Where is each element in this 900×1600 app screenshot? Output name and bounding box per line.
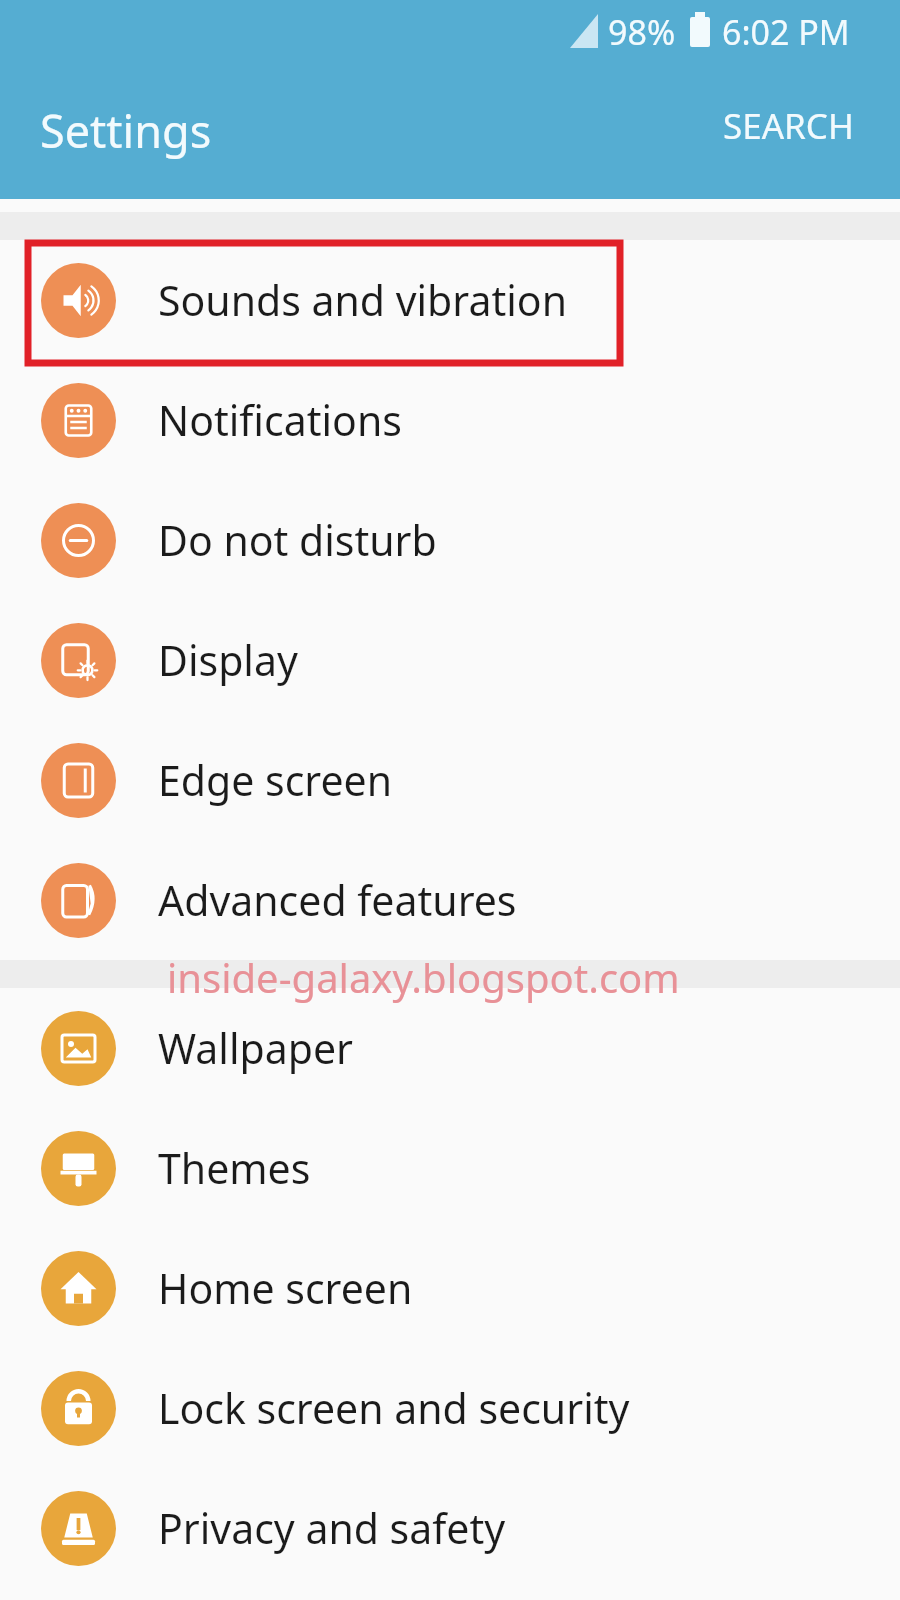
button[interactable]: Advanced features — [0, 840, 900, 960]
staticText: Display — [158, 632, 298, 688]
staticText: Lock screen and security — [158, 1380, 630, 1436]
staticText: SEARCH — [723, 102, 854, 150]
button[interactable]: Themes — [0, 1108, 900, 1228]
staticText: Settings — [40, 100, 212, 161]
button[interactable]: Wallpaper — [0, 988, 900, 1108]
staticText: Themes — [158, 1140, 311, 1196]
button[interactable]: Privacy and safety — [0, 1468, 900, 1588]
button[interactable]: Home screen — [0, 1228, 900, 1348]
staticText: Privacy and safety — [158, 1500, 506, 1556]
staticText: 6:02 PM — [722, 9, 850, 55]
button[interactable]: Do not disturb — [0, 480, 900, 600]
button[interactable]: SEARCH — [709, 92, 868, 160]
button[interactable]: Display — [0, 600, 900, 720]
staticText: Edge screen — [158, 752, 393, 808]
staticText: Do not disturb — [158, 512, 437, 568]
staticText: Advanced features — [158, 872, 517, 928]
staticText: Notifications — [158, 392, 402, 448]
staticText: Sounds and vibration — [158, 272, 567, 328]
staticText: inside-galaxy.blogspot.com — [167, 950, 680, 1004]
staticText: 98% — [608, 9, 676, 55]
button[interactable]: Edge screen — [0, 720, 900, 840]
button[interactable]: Lock screen and security — [0, 1348, 900, 1468]
staticText: Wallpaper — [158, 1020, 353, 1076]
button[interactable]: Sounds and vibration — [0, 240, 900, 360]
button[interactable]: Notifications — [0, 360, 900, 480]
staticText: Home screen — [158, 1260, 413, 1316]
